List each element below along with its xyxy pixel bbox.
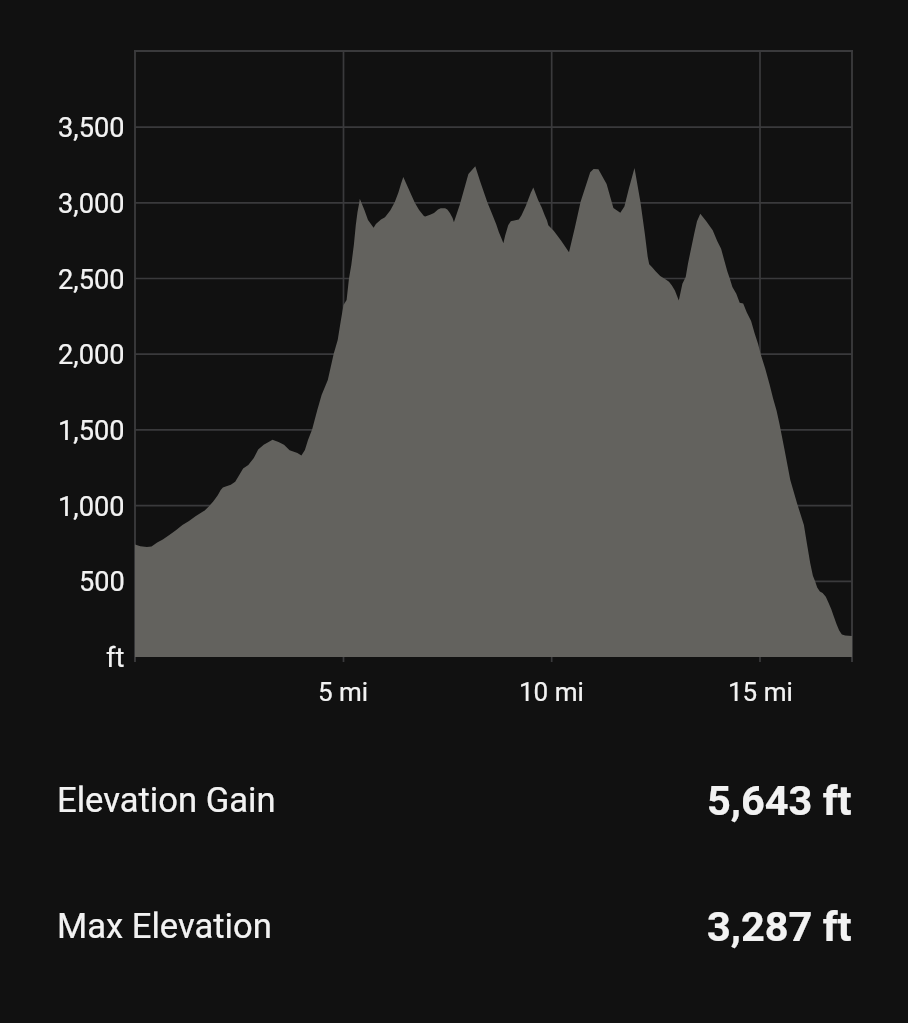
staticText: 2,500 [58, 264, 125, 296]
staticText: Elevation Gain [57, 780, 276, 821]
button[interactable]: Max Elevation, 3,287 ft [0, 880, 908, 964]
staticText: 1,500 [58, 415, 125, 447]
staticText: 5 mi [318, 677, 369, 707]
button[interactable]: Elevation profile chart [0, 0, 908, 1023]
staticText: 10 mi [519, 677, 584, 707]
staticText: 3,287 ft [707, 902, 852, 951]
staticText: 15 mi [728, 677, 793, 707]
staticText: 5,643 ft [707, 776, 852, 825]
staticText: 2,000 [58, 339, 125, 371]
staticText: ft [106, 642, 125, 674]
button[interactable]: Elevation Gain, 5,643 ft [0, 754, 908, 838]
staticText: 3,000 [58, 188, 125, 220]
staticText: 500 [79, 566, 125, 598]
staticText: 1,000 [58, 491, 125, 523]
staticText: Max Elevation [57, 906, 272, 947]
staticText: 3,500 [58, 112, 125, 144]
